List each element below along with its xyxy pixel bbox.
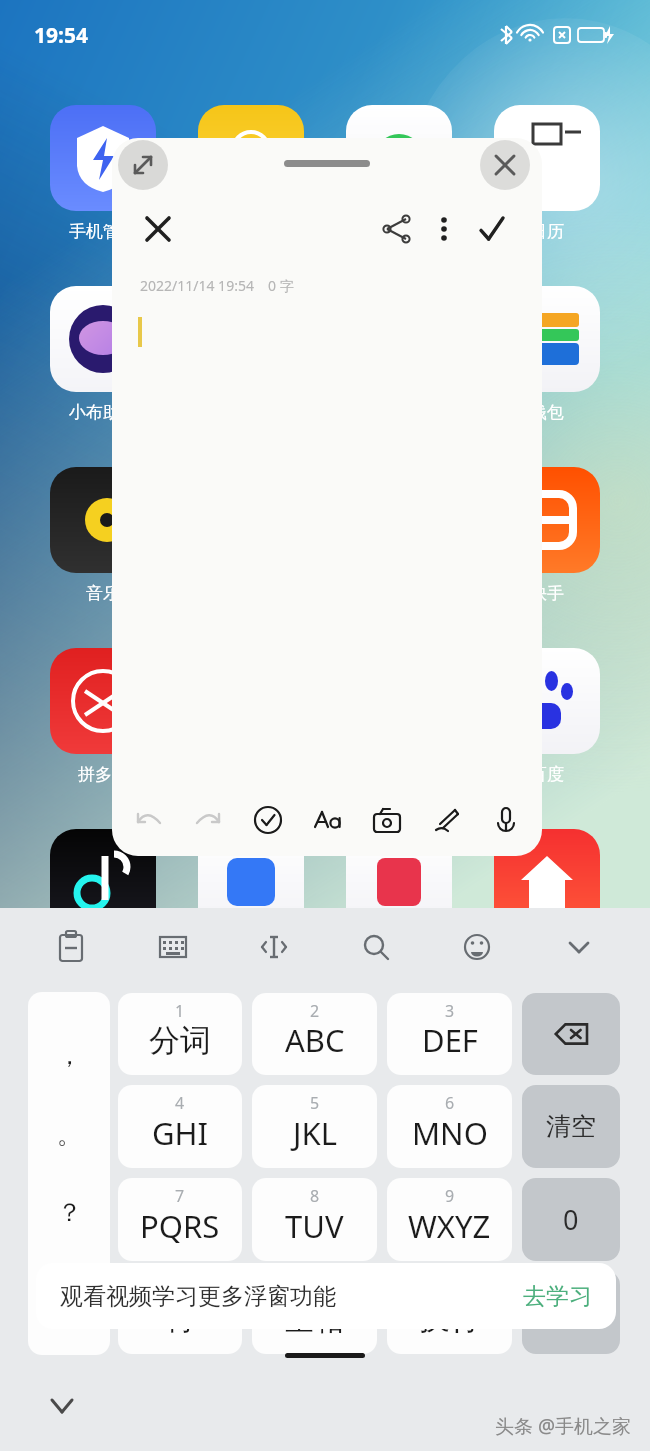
- button[interactable]: Share: [372, 205, 420, 253]
- button[interactable]: Camera: [364, 797, 410, 843]
- button[interactable]: Backspace: [522, 993, 620, 1075]
- button[interactable]: Done: [468, 205, 516, 253]
- button[interactable]: ，: [28, 992, 110, 1355]
- button[interactable]: 安家: [494, 829, 600, 966]
- button[interactable]: Cursor move: [247, 920, 301, 974]
- staticText: ABC: [285, 1019, 345, 1061]
- staticText: 空格: [284, 1299, 346, 1338]
- button[interactable]: Draw: [423, 797, 469, 843]
- button[interactable]: 3: [387, 993, 512, 1075]
- staticText: 2022/11/14 19:54: [140, 276, 254, 295]
- staticText: TUV: [285, 1205, 344, 1247]
- staticText: 5: [310, 1092, 320, 1114]
- staticText: DEF: [422, 1019, 478, 1061]
- button[interactable]: 百度: [494, 648, 600, 785]
- button[interactable]: [346, 105, 452, 211]
- button[interactable]: 去学习: [523, 1282, 592, 1311]
- button[interactable]: 快手: [494, 467, 600, 604]
- staticText: 9: [445, 1185, 455, 1207]
- button[interactable]: 7: [118, 1178, 242, 1261]
- staticText: 快手: [530, 583, 564, 604]
- staticText: 8: [310, 1185, 320, 1207]
- button[interactable]: Voice: [483, 797, 529, 843]
- staticText: ，: [57, 1040, 82, 1071]
- staticText: 19:54: [34, 21, 88, 50]
- staticText: 音乐: [86, 583, 120, 604]
- button[interactable]: 2: [252, 993, 377, 1075]
- button[interactable]: 4: [118, 1085, 242, 1168]
- staticText: 清空: [546, 1111, 596, 1142]
- button[interactable]: 符: [118, 1271, 242, 1354]
- button[interactable]: Expand window: [118, 140, 168, 190]
- button[interactable]: Checklist: [245, 797, 291, 843]
- button[interactable]: 钱包: [494, 286, 600, 423]
- staticText: 小布助手: [69, 402, 137, 423]
- staticText: 4: [175, 1092, 185, 1114]
- button[interactable]: 6: [387, 1085, 512, 1168]
- staticText: 符: [165, 1299, 196, 1338]
- button[interactable]: 空格: [252, 1271, 377, 1354]
- button[interactable]: 9: [387, 1178, 512, 1261]
- staticText: 2: [310, 1000, 320, 1022]
- button[interactable]: 拼多多: [50, 648, 156, 785]
- button[interactable]: 换行: [387, 1271, 512, 1354]
- button[interactable]: 0: [522, 1178, 620, 1261]
- button[interactable]: Text format: [304, 797, 350, 843]
- staticText: 换行: [548, 1298, 594, 1327]
- staticText: 。: [57, 1119, 82, 1150]
- button[interactable]: 8: [252, 1178, 377, 1261]
- staticText: PQRS: [140, 1205, 220, 1247]
- staticText: 7: [175, 1185, 185, 1207]
- staticText: 头条 @手机之家: [495, 1413, 632, 1439]
- button[interactable]: [346, 829, 452, 935]
- button[interactable]: Close note: [134, 205, 182, 253]
- button[interactable]: Close floating window: [480, 140, 530, 190]
- staticText: 6: [445, 1092, 455, 1114]
- staticText: 去学习: [523, 1282, 592, 1311]
- staticText: MNO: [412, 1112, 488, 1154]
- button[interactable]: 清空: [522, 1085, 620, 1168]
- button[interactable]: [198, 829, 304, 935]
- button[interactable]: 音乐: [50, 467, 156, 604]
- staticText: ！: [57, 1276, 82, 1307]
- button[interactable]: Redo: [185, 797, 231, 843]
- button[interactable]: Keyboard layout: [146, 920, 200, 974]
- button[interactable]: 5: [252, 1085, 377, 1168]
- staticText: 0: [563, 1201, 579, 1238]
- staticText: 日历: [530, 221, 564, 242]
- button[interactable]: 手机管家: [50, 105, 156, 242]
- button[interactable]: 抖音: [50, 829, 156, 966]
- staticText: 分词: [149, 1021, 211, 1060]
- other: Backspace: [551, 1014, 591, 1054]
- staticText: 手机管家: [69, 221, 137, 242]
- staticText: 拼多多: [78, 764, 129, 785]
- staticText: 0 字: [268, 276, 294, 295]
- button[interactable]: Emoji: [450, 920, 504, 974]
- button[interactable]: More options: [420, 205, 468, 253]
- button[interactable]: Hide keyboard: [552, 920, 606, 974]
- button[interactable]: Collapse: [40, 1383, 84, 1427]
- button[interactable]: 换行: [522, 1271, 620, 1354]
- staticText: ？: [57, 1197, 82, 1228]
- button[interactable]: Clipboard: [44, 920, 98, 974]
- button[interactable]: [198, 105, 304, 211]
- staticText: WXYZ: [408, 1205, 491, 1247]
- staticText: JKL: [293, 1112, 337, 1154]
- button[interactable]: 日历: [494, 105, 600, 242]
- button[interactable]: Search: [349, 920, 403, 974]
- button[interactable]: Undo: [126, 797, 172, 843]
- button[interactable]: [198, 286, 304, 392]
- button[interactable]: 小布助手: [50, 286, 156, 423]
- staticText: 3: [445, 1000, 455, 1022]
- button[interactable]: 1: [118, 993, 242, 1075]
- button[interactable]: 观看视频学习更多浮窗功能: [36, 1263, 616, 1329]
- staticText: 百度: [530, 764, 564, 785]
- staticText: 1: [175, 1000, 185, 1022]
